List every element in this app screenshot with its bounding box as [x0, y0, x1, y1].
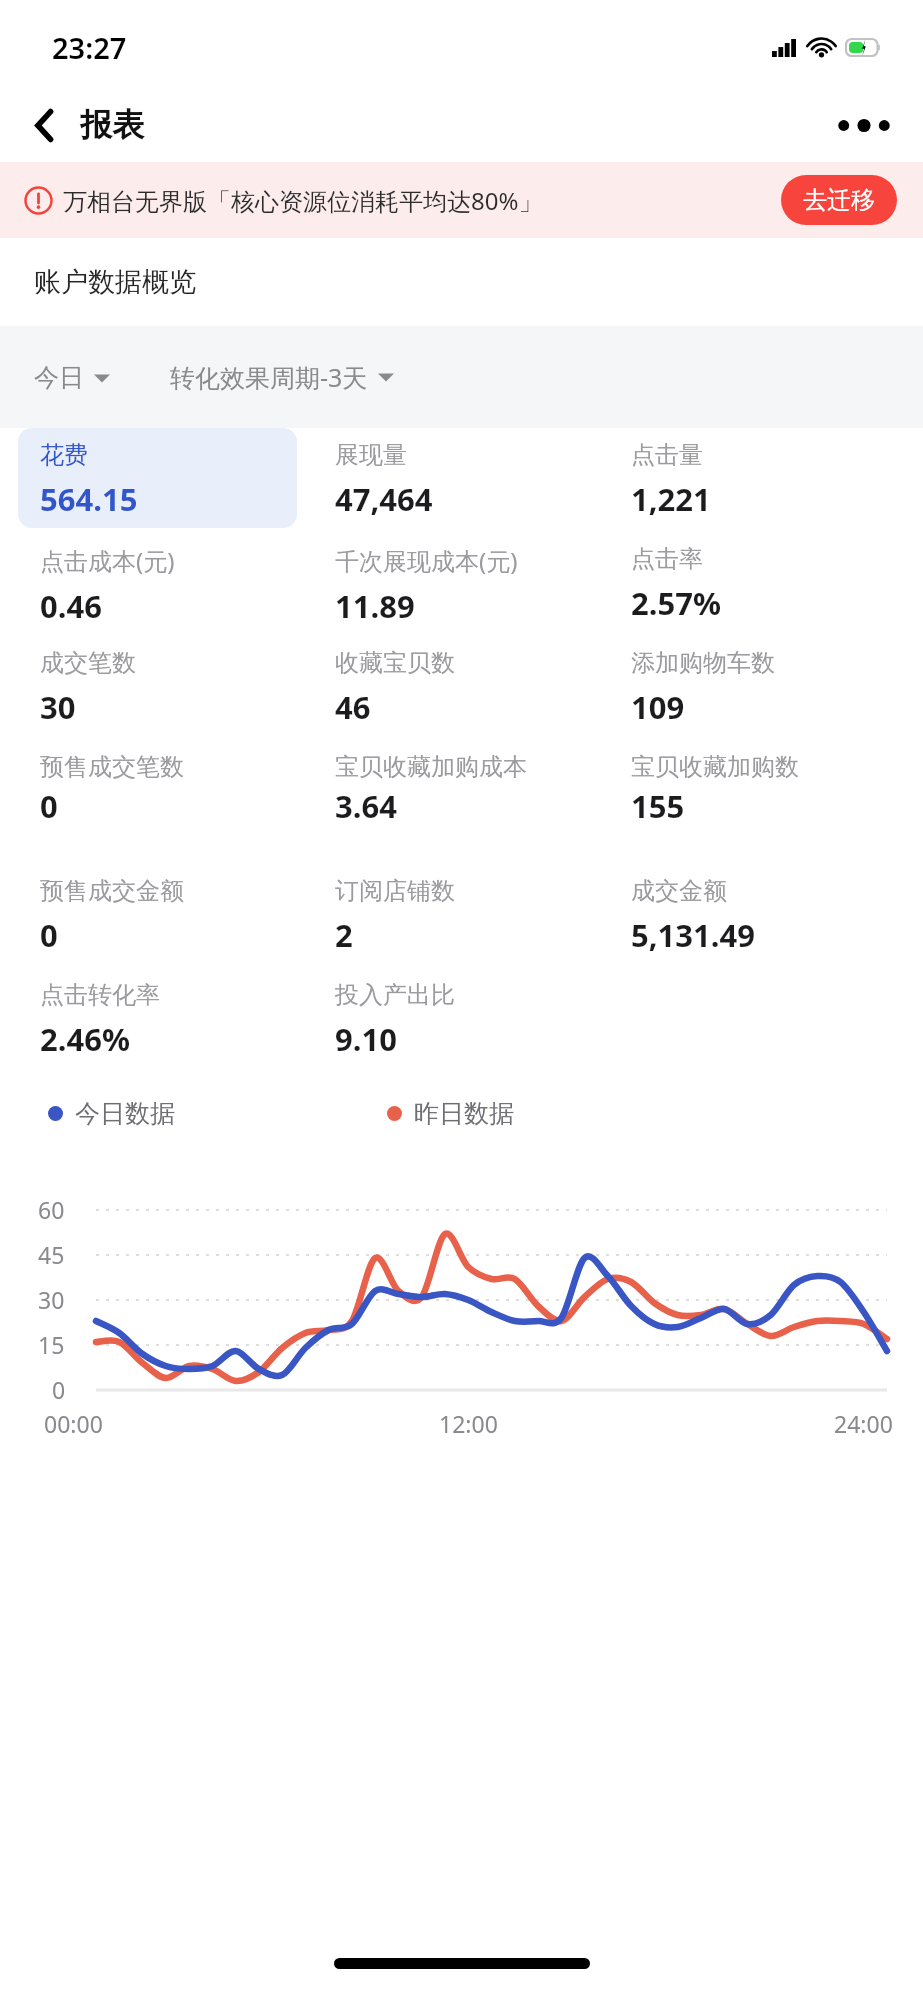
staticText: 万相台无界版「核心资源位消耗平均达80%」	[63, 184, 775, 217]
staticText: 今日	[34, 362, 84, 393]
staticText: 45	[38, 1239, 65, 1270]
button[interactable]: 成交笔数	[18, 636, 313, 740]
staticText: 11.89	[335, 585, 415, 627]
staticText: 账户数据概览	[34, 265, 196, 299]
button[interactable]: 点击量	[609, 428, 905, 532]
staticText: 30	[38, 1284, 65, 1315]
button[interactable]: 今日数据	[48, 1098, 175, 1129]
staticText: 24:00	[834, 1408, 893, 1439]
staticText: 23:27	[52, 28, 127, 67]
button[interactable]: 今日	[34, 354, 110, 401]
staticText: 15	[38, 1329, 65, 1360]
staticText: 点击量	[631, 440, 703, 470]
staticText: 109	[631, 686, 685, 728]
button[interactable]: 投入产出比	[313, 968, 609, 1072]
staticText: 12:00	[439, 1408, 498, 1439]
staticText: 千次展现成本(元)	[335, 544, 518, 577]
button[interactable]: 转化效果周期-3天	[170, 352, 394, 402]
staticText: 0.46	[40, 585, 102, 627]
staticText: 5,131.49	[631, 914, 755, 956]
button[interactable]: 花费	[18, 428, 297, 528]
staticText: 155	[631, 785, 685, 827]
button[interactable]: 宝贝收藏加购数	[609, 740, 905, 864]
staticText: 转化效果周期-3天	[170, 360, 368, 394]
button[interactable]: 收藏宝贝数	[313, 636, 609, 740]
button[interactable]: 预售成交金额	[18, 864, 313, 968]
staticText: 2.57%	[631, 582, 721, 624]
staticText: 点击成本(元)	[40, 544, 175, 577]
button[interactable]: 订阅店铺数	[313, 864, 609, 968]
staticText: 2	[335, 914, 353, 956]
staticText: 去迁移	[803, 185, 875, 215]
staticText: 成交笔数	[40, 648, 136, 678]
button[interactable]: 点击转化率	[18, 968, 313, 1072]
staticText: 0	[40, 785, 58, 827]
button[interactable]: 添加购物车数	[609, 636, 905, 740]
staticText: 投入产出比	[335, 980, 455, 1010]
staticText: 添加购物车数	[631, 648, 775, 678]
staticText: 30	[40, 686, 76, 728]
button[interactable]: 万相台无界版「核心资源位消耗平均达80%」	[0, 162, 923, 238]
staticText: 46	[335, 686, 371, 728]
staticText: 订阅店铺数	[335, 876, 455, 906]
button[interactable]: 昨日数据	[387, 1098, 514, 1129]
staticText: 成交金额	[631, 876, 727, 906]
staticText: 3.64	[335, 785, 397, 827]
staticText: 花费	[40, 440, 88, 470]
staticText: 00:00	[44, 1408, 103, 1439]
button[interactable]: 点击率	[609, 532, 905, 636]
staticText: 展现量	[335, 440, 407, 470]
staticText: 宝贝收藏加购数	[631, 752, 799, 782]
staticText: 报表	[80, 105, 144, 145]
button[interactable]: 成交金额	[609, 864, 905, 968]
staticText: 今日数据	[75, 1098, 175, 1129]
button[interactable]: 展现量	[313, 428, 609, 532]
button[interactable]: More options	[833, 102, 895, 148]
button[interactable]: 去迁移	[781, 175, 897, 225]
staticText: 宝贝收藏加购成本	[335, 752, 527, 782]
staticText: 点击转化率	[40, 980, 160, 1010]
staticText: 0	[40, 914, 58, 956]
staticText: 点击率	[631, 544, 703, 574]
staticText: 预售成交金额	[40, 876, 184, 906]
button[interactable]: 宝贝收藏加购成本	[313, 740, 609, 864]
staticText: 2.46%	[40, 1018, 130, 1060]
button[interactable]: 预售成交笔数	[18, 740, 313, 864]
staticText: 1,221	[631, 478, 711, 520]
staticText: 60	[38, 1194, 65, 1225]
button[interactable]: 千次展现成本(元)	[313, 532, 609, 636]
staticText: 昨日数据	[414, 1098, 514, 1129]
staticText: 47,464	[335, 478, 433, 520]
staticText: 564.15	[40, 478, 138, 520]
staticText: 预售成交笔数	[40, 752, 184, 782]
staticText: 9.10	[335, 1018, 397, 1060]
button[interactable]: 点击成本(元)	[18, 532, 313, 636]
staticText: 0	[52, 1374, 66, 1405]
button[interactable]: Back	[20, 101, 68, 149]
staticText: 收藏宝贝数	[335, 648, 455, 678]
